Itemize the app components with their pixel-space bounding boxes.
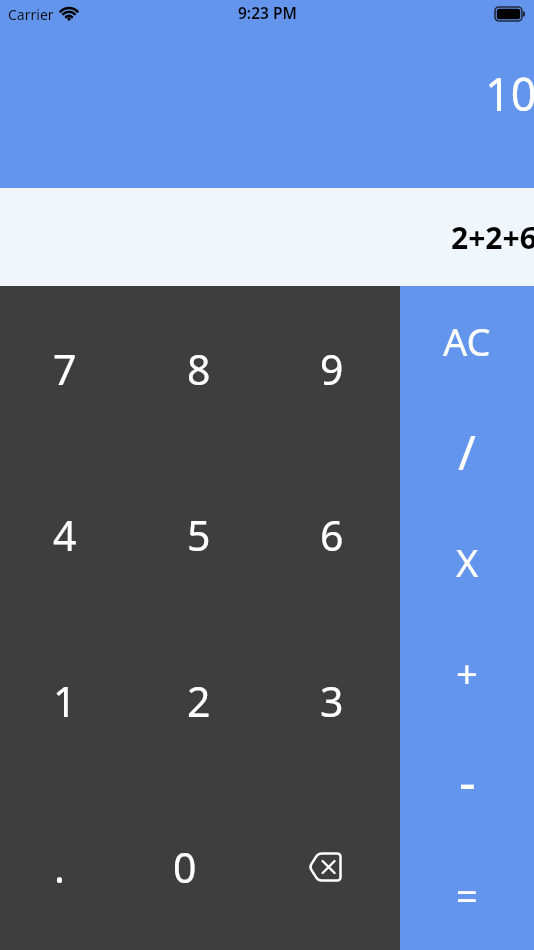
staticText: 10 <box>485 63 534 124</box>
button[interactable]: 9 <box>267 286 400 452</box>
button[interactable] <box>267 784 400 950</box>
staticText: = <box>456 869 478 921</box>
staticText: 6 <box>320 507 344 563</box>
staticText: - <box>459 745 476 816</box>
staticText: 3 <box>320 673 344 729</box>
button[interactable]: 3 <box>267 618 400 784</box>
staticText: AC <box>443 315 491 367</box>
staticText: 5 <box>187 507 211 563</box>
button[interactable]: AC <box>400 286 534 396</box>
staticText: / <box>458 419 476 484</box>
staticText: 2+2+6 <box>451 217 534 258</box>
staticText: X <box>456 536 479 588</box>
staticText: 0 <box>173 839 197 895</box>
staticText: 8 <box>187 341 211 397</box>
button[interactable]: 1 <box>0 618 134 784</box>
button[interactable]: 5 <box>134 452 267 618</box>
staticText: Carrier <box>8 5 54 24</box>
button[interactable]: / <box>400 396 534 506</box>
button[interactable]: 8 <box>134 286 267 452</box>
button[interactable]: 6 <box>267 452 400 618</box>
button[interactable]: 4 <box>0 452 134 618</box>
staticText: 4 <box>53 507 77 563</box>
staticText: 2 <box>187 673 211 729</box>
staticText: + <box>456 647 478 699</box>
button[interactable]: . <box>0 784 134 950</box>
staticText: 1 <box>53 673 77 729</box>
button[interactable]: X <box>400 506 534 617</box>
staticText: 9:23 PM <box>238 2 297 23</box>
staticText: . <box>54 839 65 895</box>
button[interactable]: 0 <box>134 784 267 950</box>
button[interactable]: + <box>400 617 534 728</box>
button[interactable]: 7 <box>0 286 134 452</box>
staticText: 7 <box>53 341 77 397</box>
button[interactable]: - <box>400 728 534 839</box>
staticText: 9 <box>320 341 344 397</box>
button[interactable]: = <box>400 839 534 950</box>
button[interactable]: 2 <box>134 618 267 784</box>
